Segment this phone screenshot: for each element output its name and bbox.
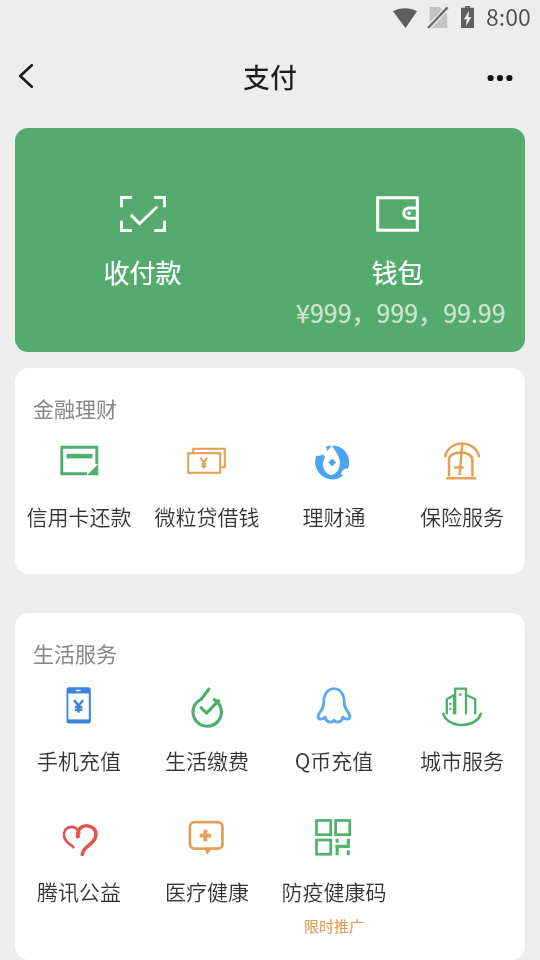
- staticText: 城市服务: [398, 745, 525, 775]
- button[interactable]: 理财通: [270, 429, 398, 519]
- button[interactable]: 钱包: [270, 128, 525, 352]
- staticText: 生活缴费: [143, 745, 271, 775]
- staticText: 支付: [243, 57, 297, 96]
- button[interactable]: 微粒贷借钱: [143, 429, 271, 519]
- button[interactable]: More options: [474, 53, 522, 101]
- staticText: 理财通: [270, 501, 398, 531]
- button[interactable]: 手机充值: [15, 673, 143, 763]
- button[interactable]: 保险服务: [398, 429, 525, 519]
- button[interactable]: 城市服务: [398, 673, 525, 763]
- staticText: 保险服务: [398, 501, 525, 531]
- staticText: 防疫健康码: [270, 876, 398, 906]
- button[interactable]: 医疗健康: [143, 804, 271, 894]
- button[interactable]: 腾讯公益: [15, 804, 143, 894]
- button[interactable]: 信用卡还款: [15, 429, 143, 519]
- staticText: 限时推广: [270, 915, 398, 937]
- button[interactable]: Back: [2, 53, 50, 101]
- button[interactable]: Q币充值: [270, 673, 398, 763]
- staticText: 微粒贷借钱: [143, 501, 271, 531]
- staticText: 钱包: [270, 253, 525, 291]
- staticText: 生活服务: [33, 638, 117, 668]
- staticText: 腾讯公益: [15, 876, 143, 906]
- button[interactable]: 生活缴费: [143, 673, 271, 763]
- staticText: 手机充值: [15, 745, 143, 775]
- button[interactable]: 收付款: [15, 128, 270, 352]
- staticText: 收付款: [15, 253, 270, 291]
- staticText: 金融理财: [33, 393, 117, 423]
- staticText: 8:00: [486, 0, 531, 32]
- staticText: 医疗健康: [143, 876, 271, 906]
- button[interactable]: 防疫健康码: [270, 804, 398, 920]
- staticText: ¥999，999，99.99: [296, 294, 506, 330]
- staticText: 信用卡还款: [15, 501, 143, 531]
- staticText: Q币充值: [270, 745, 398, 775]
